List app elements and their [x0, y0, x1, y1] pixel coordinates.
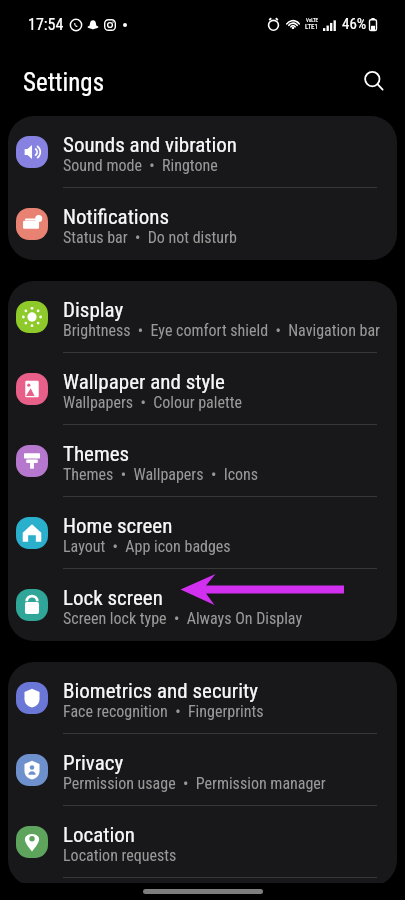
button[interactable]: Biometrics and security: [8, 662, 397, 734]
staticText: Sound mode • Ringtone: [63, 156, 218, 175]
staticText: Location: [63, 823, 136, 848]
button[interactable]: Display: [8, 281, 397, 353]
button[interactable]: Sounds and vibration: [8, 116, 397, 188]
button[interactable]: Notifications: [8, 188, 397, 260]
staticText: Brightness • Eye comfort shield • Naviga…: [63, 321, 380, 340]
staticText: VoLTE: [306, 17, 318, 23]
staticText: Screen lock type • Always On Display: [63, 609, 303, 628]
staticText: Permission usage • Permission manager: [63, 774, 326, 793]
staticText: Sounds and vibration: [63, 133, 237, 158]
staticText: Status bar • Do not disturb: [63, 228, 237, 247]
staticText: Settings: [23, 68, 105, 97]
button[interactable]: Home screen: [8, 497, 397, 569]
staticText: Lock screen: [63, 586, 163, 611]
staticText: Themes: [63, 442, 130, 467]
staticText: Privacy: [63, 751, 124, 776]
button[interactable]: Lock screen: [8, 569, 397, 641]
staticText: Home screen: [63, 514, 173, 539]
button[interactable]: Search: [358, 65, 390, 97]
staticText: Notifications: [63, 205, 169, 230]
staticText: Display: [63, 298, 124, 323]
staticText: Biometrics and security: [63, 679, 258, 704]
staticText: Themes • Wallpapers • Icons: [63, 465, 259, 484]
staticText: LTE1: [305, 23, 318, 31]
button[interactable]: Location: [8, 806, 397, 878]
staticText: Wallpaper and style: [63, 370, 225, 395]
staticText: Layout • App icon badges: [63, 537, 231, 556]
button[interactable]: Themes: [8, 425, 397, 497]
staticText: Location requests: [63, 846, 177, 865]
staticText: 17:54: [28, 15, 64, 34]
button[interactable]: Privacy: [8, 734, 397, 806]
button[interactable]: Wallpaper and style: [8, 353, 397, 425]
staticText: Wallpapers • Colour palette: [63, 393, 242, 412]
staticText: Face recognition • Fingerprints: [63, 702, 264, 721]
staticText: 46%: [342, 15, 367, 33]
